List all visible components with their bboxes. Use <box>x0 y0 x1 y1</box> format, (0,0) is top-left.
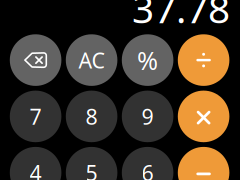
button[interactable]: 6 <box>122 147 173 180</box>
button[interactable]: 5 <box>66 147 117 180</box>
button[interactable]: Delete <box>10 34 61 86</box>
staticText: % <box>137 43 158 77</box>
button[interactable]: All clear <box>66 34 117 86</box>
staticText: 4 <box>30 158 42 180</box>
staticText: 7 <box>30 102 42 130</box>
button[interactable]: 4 <box>10 147 61 180</box>
button[interactable]: 9 <box>122 91 173 142</box>
button[interactable]: 7 <box>10 91 61 142</box>
staticText: 37.78 <box>132 0 230 34</box>
button[interactable]: Percent <box>122 34 173 86</box>
button[interactable]: Divide <box>178 34 229 86</box>
staticText: 9 <box>142 102 154 130</box>
staticText: 8 <box>86 102 98 130</box>
staticText: 5 <box>86 158 98 180</box>
button[interactable]: 8 <box>66 91 117 142</box>
staticText: AC <box>79 46 105 74</box>
button[interactable]: Multiply <box>178 91 229 142</box>
staticText: 6 <box>142 158 154 180</box>
button[interactable]: Subtract <box>178 147 229 180</box>
